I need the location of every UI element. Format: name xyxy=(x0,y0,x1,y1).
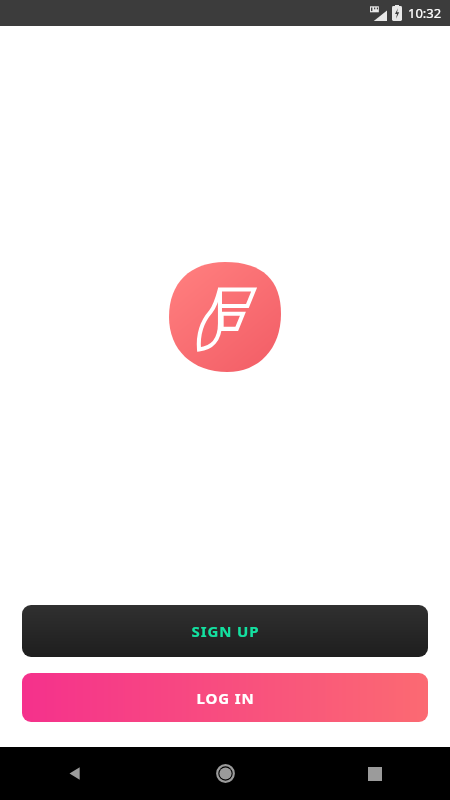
button[interactable]: Recent apps xyxy=(300,747,450,800)
staticText: 10:32 xyxy=(408,4,442,22)
button[interactable]: Back xyxy=(0,747,150,800)
button[interactable]: LOG IN xyxy=(22,673,428,722)
button[interactable]: Home xyxy=(150,747,300,800)
staticText: LOG IN xyxy=(196,688,255,708)
staticText: SIGN UP xyxy=(191,621,260,641)
button[interactable]: SIGN UP xyxy=(22,605,428,657)
